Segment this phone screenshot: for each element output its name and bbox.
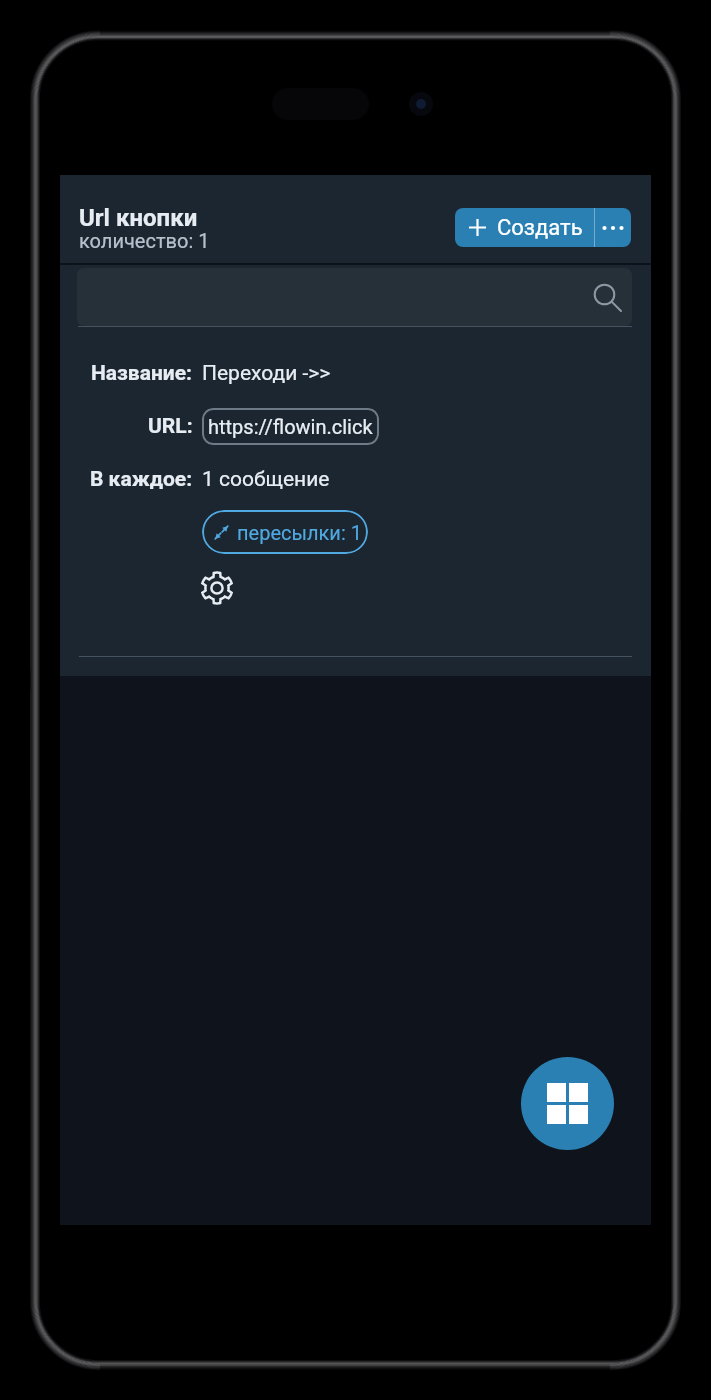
staticText: Название: xyxy=(91,361,193,386)
staticText: Создать xyxy=(497,215,583,241)
staticText: пересылки: 1 xyxy=(237,521,362,544)
button[interactable]: Settings xyxy=(195,566,239,610)
button[interactable]: More options xyxy=(595,208,631,247)
staticText: количество: 1 xyxy=(79,229,210,252)
button[interactable]: Search xyxy=(77,268,632,326)
button[interactable]: https://flowin.click xyxy=(202,408,379,445)
button[interactable]: пересылки: 1 xyxy=(202,510,368,554)
button[interactable]: Apps xyxy=(521,1057,614,1150)
staticText: https://flowin.click xyxy=(208,415,373,438)
staticText: Переходи ->> xyxy=(202,361,331,386)
staticText: URL: xyxy=(148,414,193,439)
button[interactable]: Url button: Переходи ->> xyxy=(60,335,651,657)
staticText: В каждое: xyxy=(90,467,193,492)
staticText: Url кнопки xyxy=(79,204,198,232)
staticText: 1 сообщение xyxy=(202,467,330,492)
button[interactable]: Создать xyxy=(455,208,594,247)
